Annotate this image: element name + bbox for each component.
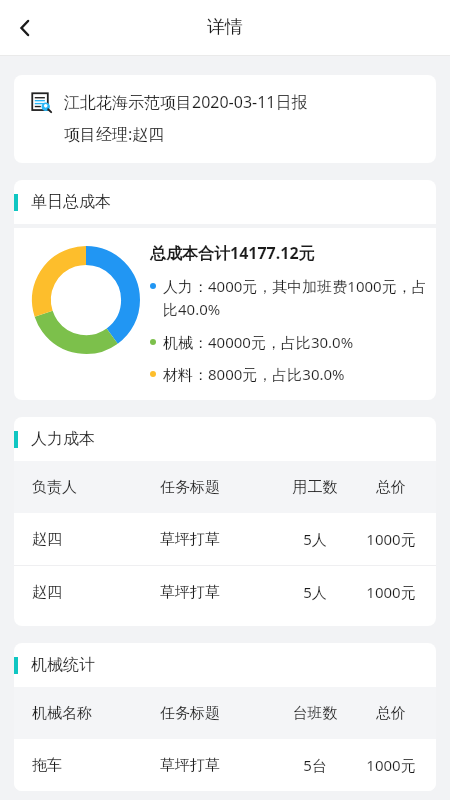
staticText: 详情 bbox=[207, 16, 243, 39]
button[interactable]: Back bbox=[0, 3, 50, 53]
staticText: 任务标题 bbox=[160, 478, 220, 497]
button[interactable]: 人力成本 bbox=[14, 417, 436, 461]
button[interactable]: 赵四 bbox=[14, 566, 436, 618]
staticText: 草坪打草 bbox=[160, 756, 220, 775]
staticText: 用工数 bbox=[270, 478, 360, 497]
staticText: 赵四 bbox=[32, 583, 62, 602]
button[interactable]: 赵四 bbox=[14, 513, 436, 565]
staticText: 5人 bbox=[270, 529, 360, 549]
staticText: 江北花海示范项目2020-03-11日报 bbox=[64, 91, 308, 113]
staticText: 台班数 bbox=[270, 704, 360, 723]
staticText: 项目经理:赵四 bbox=[64, 123, 165, 145]
button[interactable]: 江北花海示范项目2020-03-11日报 bbox=[14, 75, 436, 163]
staticText: 人力：4000元，其中加班费1000元，占比40.0% bbox=[163, 276, 428, 320]
staticText: 机械统计 bbox=[31, 655, 95, 675]
staticText: 赵四 bbox=[32, 530, 62, 549]
staticText: 材料：8000元，占比30.0% bbox=[163, 364, 345, 384]
staticText: 人力成本 bbox=[31, 429, 95, 449]
staticText: 1000元 bbox=[360, 582, 422, 602]
staticText: 5人 bbox=[270, 582, 360, 602]
staticText: 机械：40000元，占比30.0% bbox=[163, 332, 354, 352]
staticText: 任务标题 bbox=[160, 704, 220, 723]
staticText: 草坪打草 bbox=[160, 530, 220, 549]
staticText: 1000元 bbox=[360, 529, 422, 549]
staticText: 单日总成本 bbox=[31, 192, 111, 212]
button[interactable]: 拖车 bbox=[14, 739, 436, 791]
staticText: 总价 bbox=[360, 478, 422, 497]
button[interactable]: 单日总成本 bbox=[14, 180, 436, 224]
staticText: 草坪打草 bbox=[160, 583, 220, 602]
staticText: 总价 bbox=[360, 704, 422, 723]
staticText: 1000元 bbox=[360, 755, 422, 775]
staticText: 机械名称 bbox=[32, 704, 92, 723]
button[interactable]: 机械统计 bbox=[14, 643, 436, 687]
staticText: 总成本合计14177.12元 bbox=[150, 242, 315, 264]
staticText: 负责人 bbox=[32, 478, 77, 497]
staticText: 拖车 bbox=[32, 756, 62, 775]
staticText: 5台 bbox=[270, 755, 360, 775]
